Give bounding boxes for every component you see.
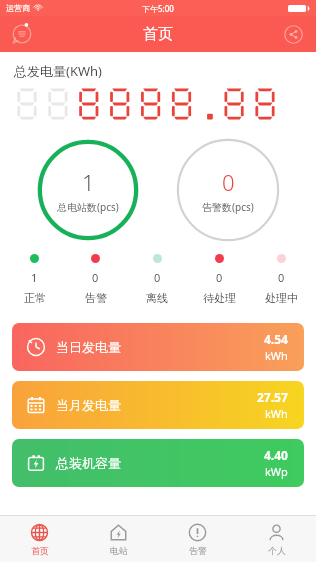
staticText: 4.54 [264, 331, 288, 347]
staticText: 告警 [189, 545, 207, 556]
button[interactable]: 总装机容量 [12, 439, 304, 487]
staticText: 总电站数(pcs) [57, 200, 119, 214]
staticText: 个人 [268, 545, 286, 556]
button[interactable]: 0 [126, 252, 188, 307]
staticText: 0 [222, 167, 235, 197]
staticText: 1 [82, 167, 95, 197]
button[interactable]: 告警 [158, 516, 237, 562]
staticText: 总装机容量 [56, 455, 121, 471]
button[interactable]: Messages [6, 18, 38, 50]
button[interactable]: 0 [188, 252, 250, 307]
staticText: 待处理 [203, 291, 236, 305]
button[interactable]: 0 [250, 252, 312, 307]
staticText: 告警 [85, 291, 107, 305]
staticText: 总发电量(KWh) [14, 62, 102, 80]
staticText: 0 [154, 270, 161, 285]
staticText: 首页 [143, 25, 173, 44]
button[interactable]: 0 [176, 138, 280, 242]
button[interactable]: Share [278, 19, 308, 49]
staticText: 告警数(pcs) [202, 200, 254, 214]
button[interactable]: 个人 [237, 516, 316, 562]
staticText: kWp [265, 464, 288, 479]
staticText: 电站 [110, 545, 128, 556]
staticText: 0 [92, 270, 99, 285]
staticText: 离线 [146, 291, 168, 305]
staticText: 4.40 [264, 447, 288, 463]
staticText: 正常 [24, 291, 46, 305]
staticText: 下午5:00 [142, 3, 174, 14]
staticText: 27.57 [257, 389, 288, 405]
staticText: 0 [216, 270, 223, 285]
staticText: 当日发电量 [56, 339, 121, 355]
staticText: kWh [265, 348, 288, 363]
staticText: kWh [265, 406, 288, 421]
staticText: 处理中 [265, 291, 298, 305]
button[interactable]: 电站 [79, 516, 158, 562]
button[interactable]: 0 [65, 252, 126, 307]
staticText: 运营商 [6, 3, 30, 13]
button[interactable]: 当日发电量 [12, 323, 304, 371]
staticText: 当月发电量 [56, 397, 121, 413]
button[interactable]: 当月发电量 [12, 381, 304, 429]
button[interactable]: 1 [36, 138, 140, 242]
staticText: 1 [31, 270, 38, 285]
button[interactable]: 首页 [0, 516, 79, 562]
staticText: 首页 [31, 545, 49, 556]
button[interactable]: 1 [4, 252, 65, 307]
staticText: 0 [278, 270, 285, 285]
